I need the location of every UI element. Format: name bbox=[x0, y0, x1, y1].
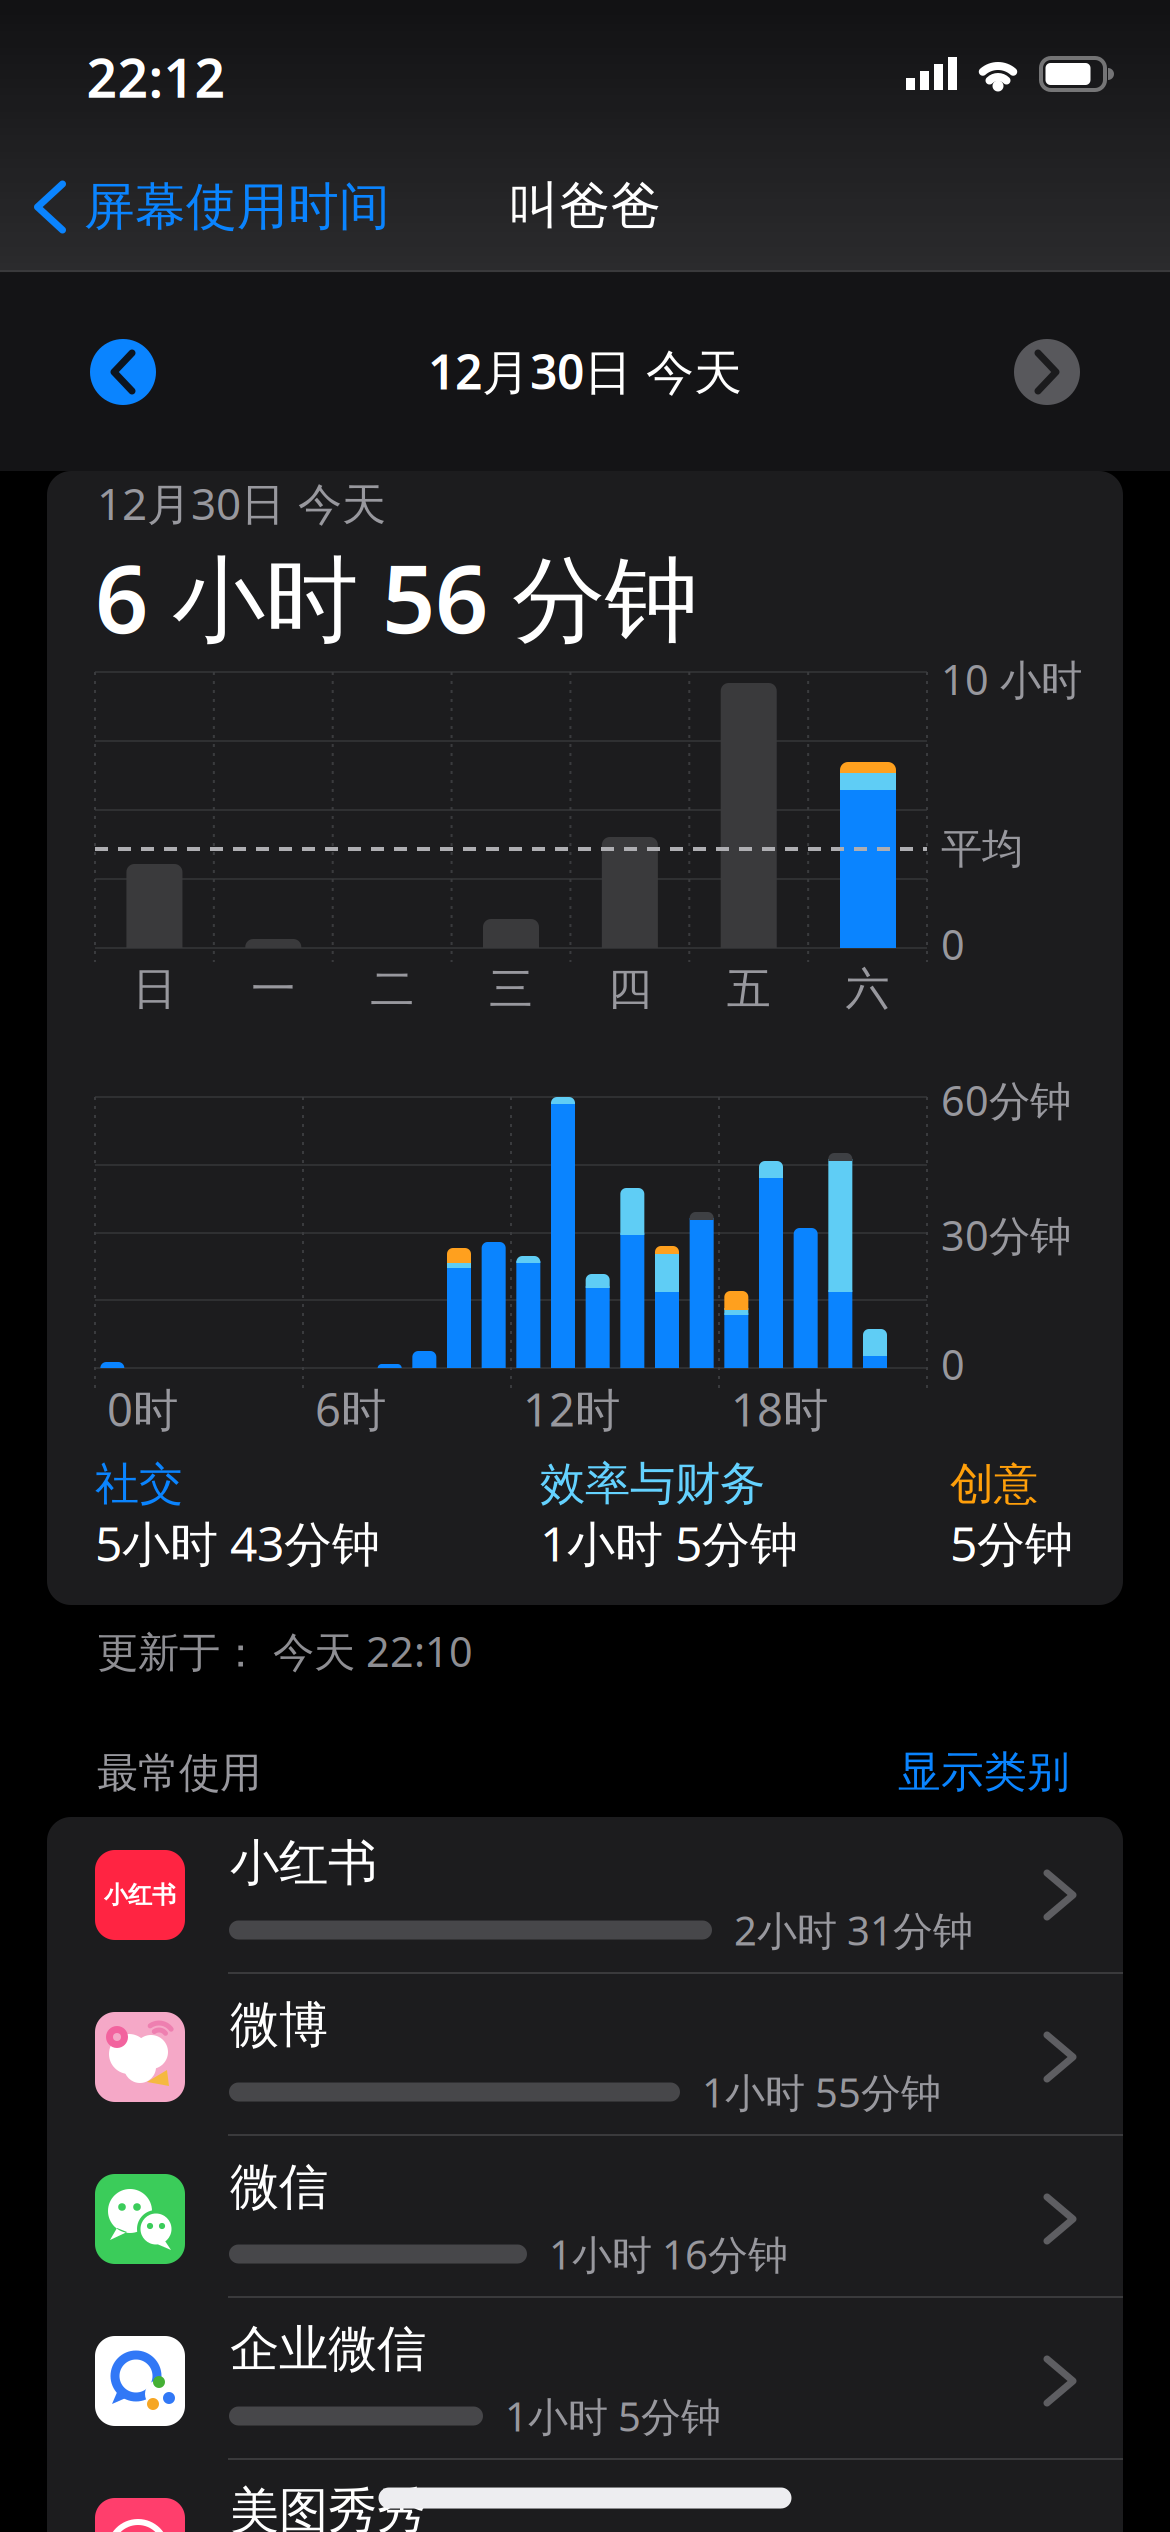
button[interactable]: 显示类别 bbox=[898, 1746, 1070, 1798]
staticText: 二 bbox=[370, 962, 414, 1016]
staticText: 5分钟 bbox=[950, 1511, 1073, 1575]
button[interactable]: 企业微信 bbox=[47, 2300, 1123, 2462]
button[interactable]: 屏幕使用时间 bbox=[34, 176, 390, 238]
staticText: 微博 bbox=[230, 1995, 328, 2055]
staticText: 60分钟 bbox=[941, 1073, 1071, 1127]
staticText: 小红书 bbox=[104, 1880, 176, 1910]
staticText: 10 小时 bbox=[941, 652, 1082, 706]
staticText: 1小时 5分钟 bbox=[505, 2389, 721, 2442]
staticText: 0时 bbox=[107, 1379, 178, 1439]
staticText: 最常使用 bbox=[97, 1748, 261, 1798]
staticText: 6 小时 56 分钟 bbox=[95, 535, 698, 659]
button[interactable]: 微博 bbox=[47, 1976, 1123, 2138]
staticText: 屏幕使用时间 bbox=[84, 176, 390, 238]
button[interactable]: 后一天 bbox=[1014, 339, 1080, 405]
staticText: 微信 bbox=[230, 2157, 328, 2217]
staticText: 1小时 5分钟 bbox=[540, 1511, 798, 1575]
staticText: 1小时 55分钟 bbox=[702, 2065, 941, 2118]
staticText: 社交 bbox=[95, 1457, 183, 1511]
staticText: 18时 bbox=[731, 1379, 828, 1439]
staticText: 叫爸爸 bbox=[508, 175, 661, 237]
staticText: 小红书 bbox=[230, 1833, 377, 1893]
staticText: 创意 bbox=[950, 1457, 1038, 1511]
staticText: 日 bbox=[132, 962, 176, 1016]
staticText: 平均 bbox=[941, 824, 1023, 874]
staticText: 12月30日 今天 bbox=[97, 474, 386, 532]
staticText: 6时 bbox=[315, 1379, 386, 1439]
button[interactable]: 美图秀秀 bbox=[47, 2462, 1123, 2532]
staticText: 三 bbox=[489, 962, 533, 1016]
staticText: 更新于： 今天 22:10 bbox=[97, 1624, 473, 1678]
staticText: 22:12 bbox=[86, 42, 225, 112]
staticText: 12时 bbox=[523, 1379, 620, 1439]
staticText: 5小时 43分钟 bbox=[95, 1511, 380, 1575]
staticText: 六 bbox=[846, 962, 890, 1016]
staticText: 一 bbox=[251, 962, 295, 1016]
staticText: 0 bbox=[941, 917, 965, 971]
staticText: 企业微信 bbox=[230, 2319, 426, 2379]
staticText: 0 bbox=[941, 1337, 965, 1391]
staticText: 五 bbox=[727, 962, 771, 1016]
button[interactable]: 前一天 bbox=[90, 339, 156, 405]
staticText: 30分钟 bbox=[941, 1208, 1071, 1262]
staticText: 四 bbox=[608, 962, 652, 1016]
staticText: 12月30日 今天 bbox=[428, 339, 742, 403]
staticText: 效率与财务 bbox=[540, 1456, 765, 1512]
button[interactable]: 小红书 bbox=[47, 1814, 1123, 1976]
staticText: 2小时 31分钟 bbox=[734, 1903, 973, 1956]
staticText: 美图秀秀 bbox=[230, 2481, 426, 2532]
staticText: 1小时 16分钟 bbox=[549, 2227, 788, 2280]
button[interactable]: 微信 bbox=[47, 2138, 1123, 2300]
staticText: 显示类别 bbox=[898, 1746, 1070, 1798]
